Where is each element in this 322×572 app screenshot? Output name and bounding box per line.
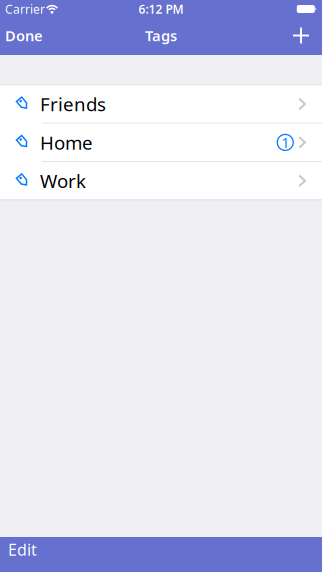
button[interactable]: Edit — [0, 537, 37, 560]
staticText: Edit — [8, 539, 37, 560]
staticText: Work — [40, 168, 86, 193]
button[interactable]: Friends — [0, 85, 322, 123]
button[interactable]: Add — [293, 27, 322, 43]
staticText: 1 — [281, 133, 289, 152]
button[interactable]: Done — [0, 26, 43, 45]
staticText: Tags — [145, 26, 177, 45]
button[interactable]: Home — [0, 124, 322, 161]
staticText: Friends — [40, 92, 106, 116]
staticText: Done — [5, 26, 43, 45]
button[interactable]: Work — [0, 162, 322, 199]
staticText: Home — [40, 130, 93, 155]
staticText: 6:12 PM — [138, 1, 183, 17]
staticText: Carrier — [5, 1, 45, 17]
